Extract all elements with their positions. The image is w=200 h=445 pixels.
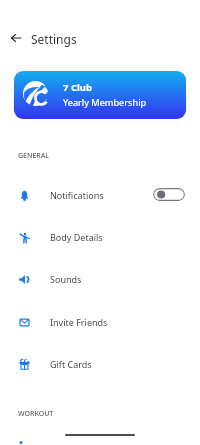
staticText: Gift Cards	[50, 358, 92, 370]
button[interactable]: Toggle notifications	[153, 188, 185, 201]
staticText: 7 Club	[63, 81, 93, 94]
button[interactable]: Invite Friends	[0, 301, 200, 343]
button[interactable]: Back	[2, 24, 30, 52]
staticText: Yearly Membership	[63, 96, 147, 109]
staticText: Sounds	[50, 273, 82, 285]
button[interactable]: Body Details	[0, 216, 200, 258]
button[interactable]: Sounds	[0, 258, 200, 300]
staticText: Invite Friends	[50, 316, 108, 328]
staticText: Body Details	[50, 231, 103, 243]
button[interactable]: Notifications	[0, 174, 200, 216]
button[interactable]: Gift Cards	[0, 343, 200, 385]
staticText: GENERAL	[18, 151, 50, 161]
button[interactable]: 7 Club	[14, 71, 186, 119]
staticText: Settings	[31, 31, 77, 47]
staticText: Notifications	[50, 189, 104, 201]
staticText: WORKOUT	[18, 409, 54, 419]
